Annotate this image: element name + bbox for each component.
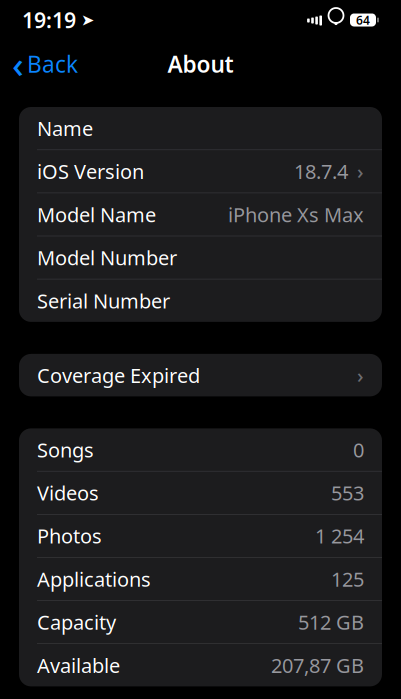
staticText: Songs [37, 436, 94, 463]
button[interactable]: Songs [19, 428, 382, 471]
button[interactable]: Available [19, 644, 382, 686]
button[interactable]: Model Number [19, 236, 382, 279]
staticText: iPhone Xs Max [228, 201, 364, 228]
staticText: 553 [331, 479, 364, 506]
staticText: 19:19 [22, 6, 76, 34]
staticText: Serial Number [37, 287, 170, 314]
button[interactable]: ‹ [0, 45, 90, 83]
staticText: Applications [37, 566, 151, 592]
staticText: 64 [356, 12, 370, 28]
staticText: 512 GB [298, 609, 364, 635]
button[interactable]: Name [19, 107, 382, 149]
button[interactable]: Photos [19, 515, 382, 557]
staticText: Back [27, 49, 78, 79]
staticText: About [167, 49, 233, 79]
staticText: 18.7.4 [294, 158, 348, 185]
button[interactable]: Model Name [19, 193, 382, 236]
staticText: Capacity [37, 609, 116, 635]
staticText: 125 [331, 566, 364, 592]
button[interactable]: Capacity [19, 601, 382, 643]
staticText: Photos [37, 523, 102, 549]
staticText: ➤ [81, 11, 94, 29]
button[interactable]: Videos [19, 471, 382, 514]
staticText: Available [37, 652, 120, 678]
button[interactable]: Coverage Expired [19, 354, 382, 396]
button[interactable]: iOS Version [19, 150, 382, 193]
staticText: 207,87 GB [271, 652, 364, 678]
staticText: 1 254 [315, 523, 364, 549]
staticText: Model Number [37, 244, 177, 271]
staticText: Name [37, 115, 93, 142]
staticText: 0 [353, 436, 364, 463]
staticText: › [357, 362, 364, 388]
staticText: Model Name [37, 201, 156, 228]
staticText: iOS Version [37, 158, 144, 185]
button[interactable]: Serial Number [19, 279, 382, 322]
button[interactable]: Applications [19, 558, 382, 600]
staticText: ‹ [12, 40, 24, 88]
staticText: › [357, 158, 364, 185]
staticText: Coverage Expired [37, 362, 200, 388]
staticText: Videos [37, 479, 99, 506]
